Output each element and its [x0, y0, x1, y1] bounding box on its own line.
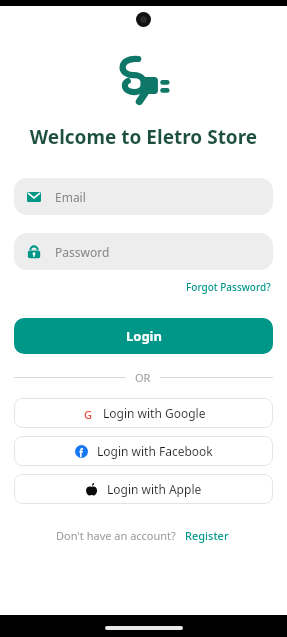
other: Eletro Store logo: [115, 54, 173, 104]
staticText: Email: [55, 189, 86, 205]
staticText: OR: [135, 370, 151, 385]
button[interactable]: Password: [14, 233, 273, 270]
button[interactable]: Email: [14, 178, 273, 215]
staticText: Register: [185, 528, 229, 543]
staticText: Don't have an account?: [56, 528, 176, 543]
staticText: Password: [55, 244, 110, 260]
button[interactable]: Login with Apple: [14, 474, 273, 504]
button[interactable]: Login with Facebook: [14, 436, 273, 466]
staticText: Login with Apple: [107, 481, 202, 497]
staticText: Welcome to Eletro Store: [0, 124, 287, 150]
staticText: Forgot Password?: [186, 280, 271, 294]
staticText: Login: [126, 327, 162, 345]
staticText: Login with Google: [103, 405, 206, 421]
button[interactable]: Login: [14, 318, 273, 354]
button[interactable]: G: [14, 398, 273, 428]
button[interactable]: Forgot Password?: [184, 278, 273, 296]
button[interactable]: Register: [183, 526, 231, 545]
staticText: G: [84, 407, 92, 420]
staticText: Login with Facebook: [97, 443, 213, 459]
